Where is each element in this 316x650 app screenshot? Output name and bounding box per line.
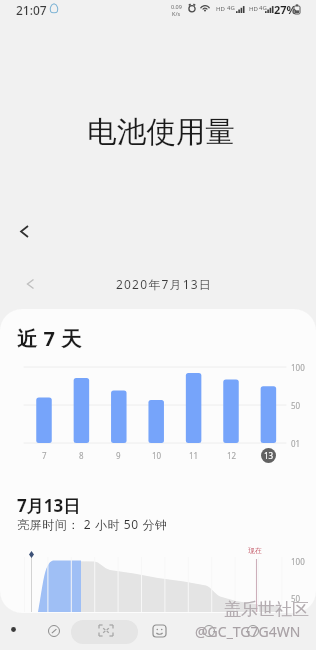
staticText: @GC_TG7G4WN <box>195 622 301 641</box>
staticText: 4G <box>259 4 267 12</box>
staticText: 50 <box>291 400 301 411</box>
button[interactable]: Pause recording <box>198 620 219 641</box>
staticText: 2020年7月13日 <box>6 276 316 292</box>
button[interactable]: Minimise recorder <box>71 620 138 644</box>
button[interactable]: Emoji <box>148 620 170 642</box>
staticText: 21:07 <box>16 2 47 18</box>
staticText: 亮屏时间： 2 小时 50 分钟 <box>17 516 168 532</box>
button[interactable]: Back <box>10 217 38 245</box>
staticText: HD <box>249 5 258 13</box>
staticText: 11 <box>189 450 199 461</box>
staticText: 10 <box>152 450 162 461</box>
staticText: 现在 <box>248 546 262 555</box>
staticText: 100 <box>291 556 305 567</box>
staticText: 0.09 <box>171 3 182 10</box>
staticText: 电池使用量 <box>3 114 316 151</box>
staticText: 8 <box>79 450 84 461</box>
staticText: 100 <box>291 362 305 373</box>
staticText: 7 <box>42 450 47 461</box>
button[interactable]: Stop recording <box>242 620 263 641</box>
staticText: K/s <box>172 10 181 17</box>
button[interactable]: Draw <box>43 620 64 641</box>
staticText: 近 7 天 <box>17 325 82 352</box>
staticText: 50 <box>291 593 301 604</box>
staticText: 7月13日 <box>17 494 81 517</box>
staticText: HD <box>216 5 225 13</box>
staticText: 盖乐世社区 <box>224 599 309 620</box>
button[interactable]: Previous day <box>18 272 42 296</box>
button[interactable]: Collapse <box>98 624 113 637</box>
staticText: 4G <box>227 4 235 12</box>
staticText: 27% <box>274 2 297 17</box>
staticText: 12 <box>227 450 237 461</box>
staticText: 9 <box>116 450 121 461</box>
staticText: 13 <box>264 450 274 461</box>
staticText: 01 <box>291 438 301 449</box>
